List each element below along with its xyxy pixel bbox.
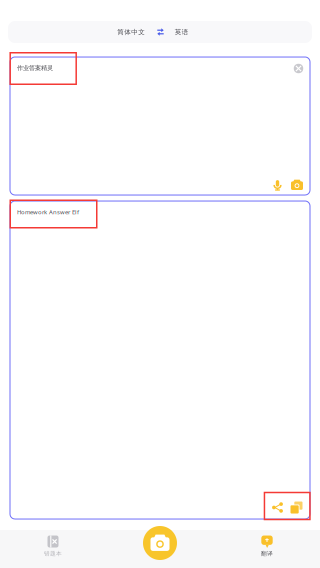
button[interactable]: Share	[272, 502, 283, 513]
button[interactable]: 简体中文	[8, 21, 312, 43]
button[interactable]: Clear text	[294, 64, 303, 73]
staticText: 错题本	[44, 550, 62, 557]
button[interactable]: Copy	[290, 501, 302, 513]
staticText: 英语	[175, 28, 189, 36]
button[interactable]: 错题本	[0, 530, 106, 568]
button[interactable]: 翻译	[214, 530, 320, 568]
button[interactable]: Take photo	[143, 526, 177, 560]
button[interactable]: Camera input	[291, 179, 303, 190]
staticText: 简体中文	[117, 28, 145, 36]
staticText: Homework Answer Elf	[17, 208, 79, 216]
staticText: 作业答案精灵	[17, 64, 53, 72]
button[interactable]: Voice input	[273, 179, 282, 190]
staticText: 翻译	[261, 550, 273, 557]
button[interactable]: Scan document	[107, 530, 213, 568]
